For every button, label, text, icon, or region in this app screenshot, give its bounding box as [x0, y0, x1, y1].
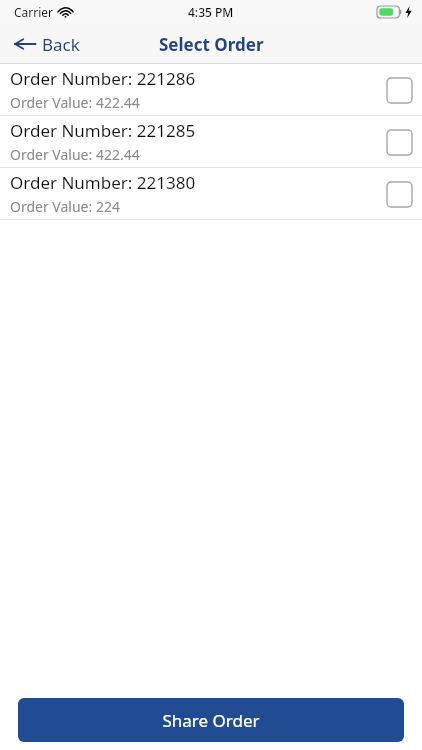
button[interactable]: Back [0, 24, 90, 64]
button[interactable]: Order Number: 221380 [0, 168, 422, 219]
button[interactable]: Order Number: 221285 [0, 116, 422, 167]
staticText: Share Order [162, 709, 260, 732]
staticText: 4:35 PM [188, 4, 234, 20]
staticText: Select Order [159, 33, 264, 56]
staticText: Back [42, 33, 80, 56]
staticText: Order Number: 221285 [10, 119, 196, 142]
staticText: Order Value: 422.44 [10, 145, 140, 164]
staticText: Carrier [14, 4, 54, 20]
button[interactable]: Select order 221286 [384, 75, 414, 105]
staticText: Order Number: 221286 [10, 67, 196, 90]
staticText: Order Value: 224 [10, 197, 120, 216]
button[interactable]: Share Order [18, 698, 404, 742]
button[interactable]: Select order 221285 [384, 127, 414, 157]
button[interactable]: Order Number: 221286 [0, 64, 422, 115]
staticText: Order Number: 221380 [10, 171, 196, 194]
staticText: Order Value: 422.44 [10, 93, 140, 112]
button[interactable]: Select order 221380 [384, 179, 414, 209]
